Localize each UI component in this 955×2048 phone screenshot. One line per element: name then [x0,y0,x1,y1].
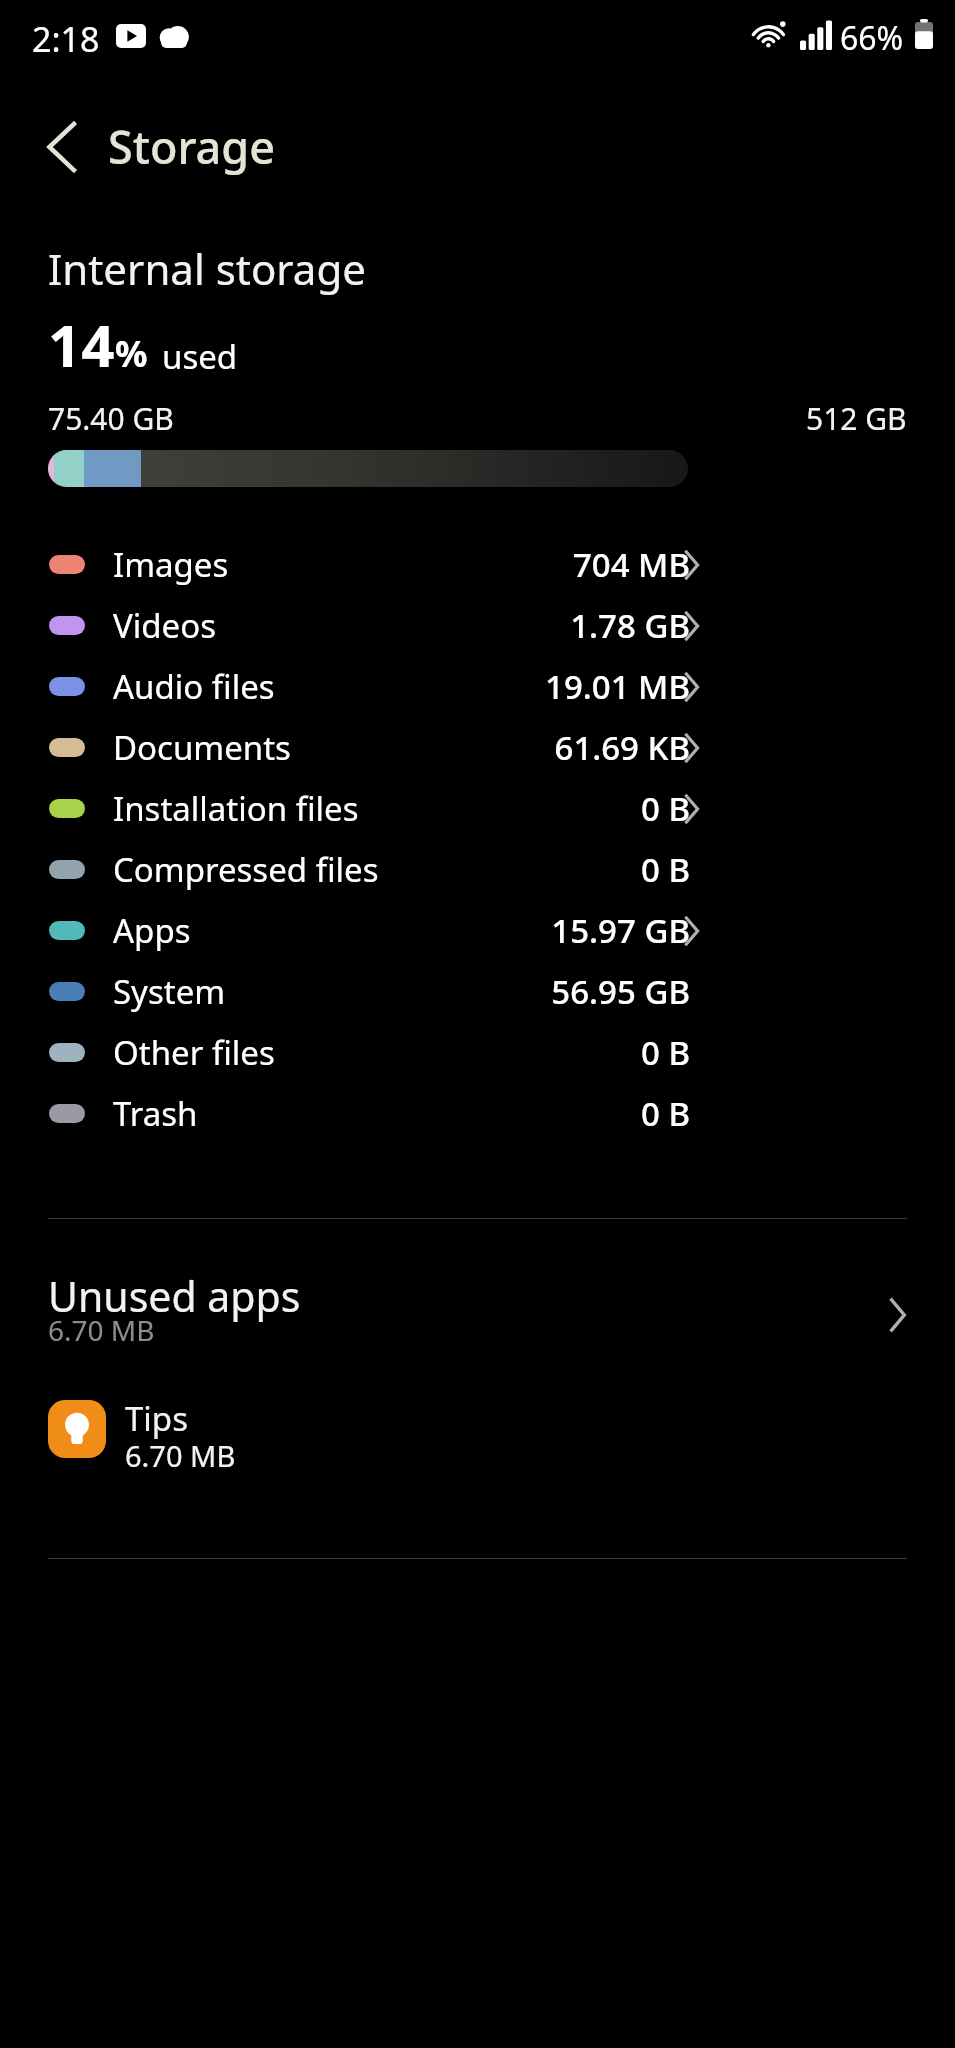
button[interactable]: Other files [0,1022,955,1083]
staticText: 75.40 GB [48,398,174,439]
button[interactable]: Tips [0,1382,955,1476]
staticText: % [115,329,148,378]
button[interactable]: Unused apps [0,1250,955,1380]
button[interactable]: System [0,961,955,1022]
staticText: 0 B [640,1091,690,1136]
button[interactable]: Installation files [0,778,955,839]
staticText: 66% [840,16,904,60]
staticText: Images [113,542,229,587]
button[interactable]: Apps [0,900,955,961]
staticText: 1.78 GB [570,603,690,648]
staticText: Trash [113,1091,198,1136]
button[interactable]: Audio files [0,656,955,717]
staticText: used [162,334,238,379]
staticText: System [113,969,226,1014]
staticText: Internal storage [48,240,366,297]
staticText: Audio files [113,664,275,709]
staticText: 704 MB [572,542,690,587]
staticText: Storage [108,116,276,177]
staticText: 61.69 KB [554,725,690,770]
button[interactable]: Images [0,534,955,595]
staticText: Unused apps [48,1268,301,1324]
staticText: Compressed files [113,847,379,892]
staticText: Videos [113,603,216,648]
staticText: 15.97 GB [551,908,690,953]
button[interactable]: Back [24,108,102,186]
staticText: 2:18 [32,16,100,62]
staticText: 6.70 MB [48,1311,155,1349]
button[interactable]: Videos [0,595,955,656]
staticText: 6.70 MB [125,1436,236,1475]
staticText: Other files [113,1030,275,1075]
button[interactable]: Trash [0,1083,955,1144]
staticText: Tips [125,1396,188,1441]
staticText: 0 B [640,786,690,831]
staticText: Documents [113,725,291,770]
button[interactable]: Compressed files [0,839,955,900]
staticText: 56.95 GB [551,969,690,1014]
staticText: 0 B [640,1030,690,1075]
staticText: Apps [113,908,191,953]
staticText: 0 B [640,847,690,892]
staticText: 14 [48,305,115,384]
staticText: 512 GB [806,398,907,439]
staticText: 19.01 MB [545,664,690,709]
button[interactable]: Documents [0,717,955,778]
staticText: Installation files [113,786,359,831]
